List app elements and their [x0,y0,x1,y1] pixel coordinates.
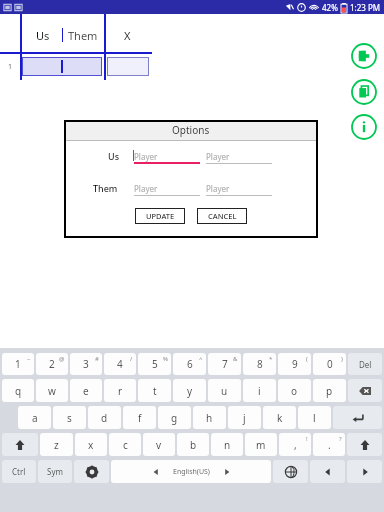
staticText: r [118,384,123,398]
staticText: . [328,438,331,452]
button[interactable]: 3 [70,353,102,375]
button[interactable]: shift [2,433,38,456]
staticText: @ [59,355,65,363]
staticText: x [88,438,94,452]
button[interactable]: u [208,379,241,402]
staticText: a [32,411,38,425]
button[interactable]: b [177,433,209,456]
staticText: 1:23 PM [350,2,381,13]
staticText: 6 [187,357,193,371]
button[interactable]: x [75,433,107,456]
button[interactable]: Player [206,182,272,196]
button[interactable]: g [158,406,191,429]
button[interactable]: h [193,406,226,429]
staticText: w [48,384,56,398]
staticText: , [294,438,297,452]
staticText: h [206,411,213,425]
button[interactable]: 0 [313,353,346,375]
button[interactable]: q [2,379,34,402]
button[interactable]: Player [134,150,200,164]
button[interactable]: r [104,379,136,402]
button[interactable]: right [347,460,382,483]
staticText: d [101,411,108,425]
button[interactable]: English(US) [111,460,271,483]
button[interactable]: 9 [278,353,311,375]
staticText: / [130,355,133,363]
button[interactable]: e [70,379,102,402]
staticText: Ctrl [12,466,26,477]
button[interactable]: Ctrl [2,460,36,483]
staticText: 9 [292,357,298,371]
staticText: 0 [327,357,333,371]
staticText: Them [93,182,118,194]
button[interactable]: o [278,379,311,402]
button[interactable]: shift [347,433,382,456]
staticText: English(US) [173,467,210,477]
button[interactable]: bksp [348,379,382,402]
staticText: y [187,384,193,398]
button[interactable]: Player [134,182,200,196]
staticText: o [291,384,298,398]
button[interactable]: . [313,433,345,456]
button[interactable]: a [18,406,51,429]
button[interactable]: c [109,433,141,456]
button[interactable]: left [310,460,345,483]
staticText: ) [341,355,343,363]
button[interactable]: 4 [104,353,136,375]
staticText: 42% [322,2,338,13]
staticText: n [224,438,231,452]
button[interactable]: y [173,379,206,402]
button[interactable]: s [53,406,86,429]
staticText: e [83,384,89,398]
button[interactable]: gear [74,460,109,483]
button[interactable]: i [243,379,276,402]
button[interactable]: 1 [2,353,34,375]
button[interactable]: Sym [38,460,72,483]
staticText: s [67,411,72,425]
button[interactable]: , [279,433,311,456]
staticText: j [243,411,246,425]
button[interactable]: Add [351,43,377,69]
button[interactable]: Del [348,353,382,375]
button[interactable]: 6 [173,353,206,375]
staticText: ^ [199,355,203,363]
button[interactable]: v [143,433,175,456]
button[interactable]: j [228,406,261,429]
button[interactable]: p [313,379,346,402]
staticText: Options [172,123,210,137]
staticText: Del [359,359,372,370]
button[interactable]: t [138,379,171,402]
button[interactable]: m [245,433,277,456]
staticText: * [269,355,273,363]
button[interactable] [107,57,149,76]
button[interactable]: l [298,406,331,429]
button[interactable]: z [40,433,73,456]
staticText: 8 [257,357,263,371]
button[interactable] [22,57,102,76]
staticText: UPDATE [146,211,175,221]
staticText: 1 [15,357,21,371]
button[interactable]: 7 [208,353,241,375]
button[interactable]: globe [273,460,308,483]
button[interactable]: w [36,379,68,402]
button[interactable]: 8 [243,353,276,375]
staticText: Player [206,151,230,162]
button[interactable]: k [263,406,296,429]
button[interactable]: CANCEL [197,208,247,224]
staticText: Player [206,183,230,194]
button[interactable]: Copy [351,79,377,105]
staticText: 2 [49,357,55,371]
button[interactable]: d [88,406,121,429]
button[interactable]: Info [351,114,377,140]
staticText: i [258,384,261,398]
staticText: f [138,411,142,425]
staticText: m [256,438,266,452]
button[interactable]: UPDATE [135,208,185,224]
button[interactable]: f [123,406,156,429]
button[interactable]: enter [333,406,382,429]
button[interactable]: 2 [36,353,68,375]
button[interactable]: Player [206,150,272,164]
button[interactable]: 5 [138,353,171,375]
button[interactable]: n [211,433,243,456]
staticText: k [277,411,283,425]
